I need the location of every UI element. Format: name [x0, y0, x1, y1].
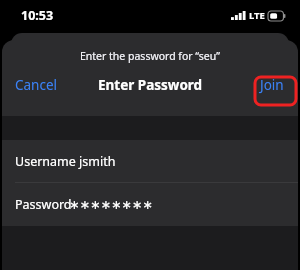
staticText: LTE: [249, 9, 265, 22]
staticText: 10:53: [21, 7, 54, 24]
button[interactable]: Cancel: [2, 70, 71, 100]
staticText: Enter the password for “seu”: [2, 49, 298, 63]
staticText: ∗∗∗∗∗∗∗∗: [69, 197, 153, 212]
staticText: Cancel: [15, 76, 58, 94]
button[interactable]: Username: [2, 140, 298, 182]
staticText: Join: [260, 76, 284, 94]
button[interactable]: Join: [246, 70, 298, 100]
button[interactable]: Password: [2, 183, 298, 226]
staticText: Username: [15, 153, 76, 170]
staticText: jsmith: [79, 153, 116, 170]
staticText: Password: [15, 196, 72, 213]
staticText: Enter Password: [98, 76, 203, 94]
